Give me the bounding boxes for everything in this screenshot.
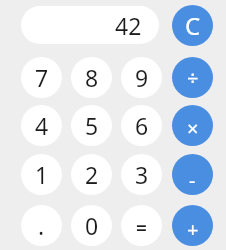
button[interactable]: 9 xyxy=(121,57,162,98)
staticText: × xyxy=(187,115,199,142)
button[interactable]: C xyxy=(172,5,213,46)
button[interactable]: + xyxy=(172,205,213,246)
staticText: 6 xyxy=(135,110,149,141)
staticText: + xyxy=(187,216,199,243)
staticText: ÷ xyxy=(187,64,199,91)
staticText: 5 xyxy=(85,110,99,141)
button[interactable]: 2 xyxy=(71,154,112,195)
staticText: . xyxy=(38,210,45,241)
button[interactable]: 8 xyxy=(71,57,112,98)
button[interactable]: 6 xyxy=(121,105,162,146)
button[interactable]: - xyxy=(172,154,213,195)
button[interactable]: 0 xyxy=(71,205,112,246)
button[interactable]: ÷ xyxy=(172,57,213,98)
staticText: 2 xyxy=(85,159,99,190)
button[interactable]: 5 xyxy=(71,105,112,146)
button[interactable]: × xyxy=(172,105,213,146)
staticText: 8 xyxy=(85,62,99,93)
button[interactable]: 3 xyxy=(121,154,162,195)
button[interactable]: 42 xyxy=(21,6,159,44)
staticText: 7 xyxy=(35,62,49,93)
staticText: 1 xyxy=(35,159,49,190)
button[interactable]: 7 xyxy=(21,57,62,98)
button[interactable]: 4 xyxy=(21,105,62,146)
staticText: 9 xyxy=(135,62,149,93)
staticText: C xyxy=(185,9,201,42)
staticText: 42 xyxy=(115,10,142,41)
staticText: 4 xyxy=(35,110,49,141)
button[interactable]: . xyxy=(21,205,62,246)
staticText: - xyxy=(189,167,196,194)
staticText: = xyxy=(136,215,147,241)
button[interactable]: = xyxy=(121,205,162,246)
staticText: 0 xyxy=(85,210,99,241)
button[interactable]: 1 xyxy=(21,154,62,195)
staticText: 3 xyxy=(135,159,149,190)
